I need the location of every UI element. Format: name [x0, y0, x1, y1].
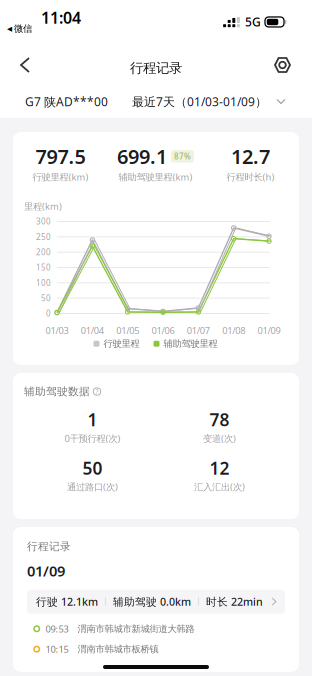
staticText: 时长 22min — [206, 594, 263, 609]
staticText: 50 — [82, 456, 102, 479]
staticText: 汇入汇出(次) — [194, 480, 245, 493]
staticText: 699.1 — [117, 143, 167, 170]
staticText: 01/05 — [116, 324, 139, 337]
staticText: 09:53 — [45, 623, 68, 635]
staticText: 微信 — [14, 23, 32, 34]
staticText: 辅助驾驶里程(km) — [118, 171, 192, 183]
staticText: 变道(次) — [203, 432, 236, 444]
staticText: 行驶里程 — [103, 338, 139, 349]
staticText: 行驶 12.1km — [36, 594, 98, 609]
button[interactable]: Back — [0, 49, 43, 81]
staticText: 辅助驾驶里程 — [163, 338, 217, 349]
staticText: 01/03 — [45, 324, 68, 337]
button[interactable]: 最近7天（01/03-01/09） — [132, 87, 285, 115]
staticText: 01/06 — [151, 324, 174, 337]
staticText: 行程时长(h) — [226, 171, 274, 183]
staticText: 10:15 — [45, 643, 68, 655]
staticText: 里程(km) — [24, 200, 62, 212]
staticText: 行程记录 — [27, 540, 71, 553]
staticText: 78 — [209, 408, 229, 431]
staticText: 辅助驾驶数据 — [24, 385, 90, 398]
staticText: 87% — [174, 151, 191, 162]
staticText: 通过路口(次) — [67, 480, 118, 493]
staticText: 0干预行程(次) — [64, 432, 120, 444]
staticText: 行程记录 — [130, 60, 182, 76]
staticText: 12.7 — [231, 143, 270, 170]
staticText: 300 — [36, 216, 51, 227]
staticText: ◀ — [7, 25, 12, 32]
button[interactable]: G7 陕AD***00 — [25, 87, 108, 115]
staticText: 01/08 — [222, 324, 245, 337]
staticText: 150 — [36, 262, 51, 273]
staticText: 辅助驾驶 0.0km — [113, 594, 191, 609]
staticText: ? — [95, 387, 98, 396]
staticText: 最近7天（01/03-01/09） — [132, 93, 267, 109]
staticText: 0 — [46, 308, 51, 319]
staticText: 12 — [209, 456, 229, 479]
staticText: 797.5 — [35, 143, 85, 170]
staticText: 行驶里程(km) — [32, 171, 88, 183]
staticText: 渭南市韩城市板桥镇 — [77, 643, 158, 655]
staticText: 50 — [41, 293, 51, 303]
staticText: 5G — [245, 14, 261, 30]
button[interactable]: Settings — [262, 50, 312, 80]
staticText: 01/04 — [81, 324, 104, 337]
staticText: 100 — [36, 277, 51, 288]
staticText: 200 — [36, 247, 51, 257]
staticText: 01/09 — [27, 561, 65, 581]
staticText: 01/09 — [257, 324, 280, 337]
button[interactable]: 行驶 12.1km — [27, 590, 285, 655]
staticText: 11:04 — [41, 7, 81, 28]
staticText: 渭南市韩城市新城街道大韩路 — [77, 623, 194, 634]
staticText: G7 陕AD***00 — [25, 93, 108, 109]
staticText: 1 — [87, 408, 97, 431]
staticText: 01/07 — [187, 324, 210, 337]
staticText: 250 — [36, 231, 51, 242]
